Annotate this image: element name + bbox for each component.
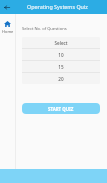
staticText: Select [54,40,68,46]
button[interactable]: 20 [22,73,100,84]
staticText: Select No. of Questions [22,26,67,32]
button[interactable]: Select [22,37,100,48]
staticText: 10 [58,52,64,58]
button[interactable]: 10 [22,49,100,60]
button[interactable]: START QUIZ [22,103,100,114]
staticText: 15 [58,64,64,70]
staticText: Home [2,29,14,34]
button[interactable]: Back [0,0,14,14]
button[interactable]: 15 [22,61,100,72]
staticText: START QUIZ [48,106,74,112]
button[interactable]: Home [0,21,15,34]
staticText: 20 [58,76,64,82]
staticText: Operating Systems Quiz [27,3,88,10]
